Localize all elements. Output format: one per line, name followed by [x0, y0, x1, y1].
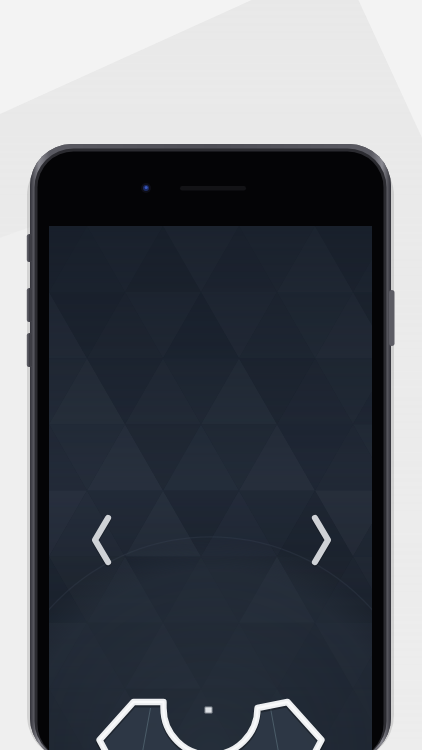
button[interactable]: Previous [74, 508, 122, 572]
button[interactable]: Next [300, 508, 348, 572]
button[interactable]: Select vehicle [110, 688, 312, 750]
